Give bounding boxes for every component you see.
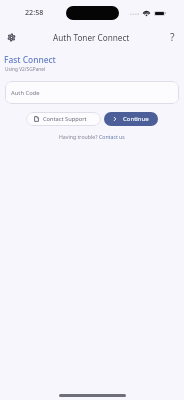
staticText: 22:58	[25, 7, 44, 17]
button[interactable]: Settings	[3, 29, 19, 45]
staticText: Auth Toner Connect	[53, 32, 130, 43]
staticText: Auth Code	[11, 89, 40, 97]
button[interactable]: Auth Code	[5, 81, 179, 104]
staticText: Having trouble?	[59, 133, 99, 140]
button[interactable]: Contact Support	[26, 112, 101, 126]
staticText: ?	[170, 30, 175, 44]
staticText: Continue	[123, 115, 149, 123]
button[interactable]: Continue	[104, 112, 158, 126]
staticText: Using V2/SGPanel	[5, 66, 46, 73]
button[interactable]: Contact us	[99, 133, 125, 140]
staticText: Fast Connect	[4, 54, 56, 65]
staticText: Contact Support	[43, 115, 87, 123]
button[interactable]: Help	[164, 29, 180, 45]
